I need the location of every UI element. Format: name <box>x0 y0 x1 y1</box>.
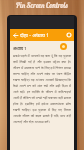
staticText: अध्याय 1 <box>13 46 27 51</box>
button[interactable]: Back <box>11 31 19 39</box>
button[interactable]: Bookmark <box>60 43 67 50</box>
staticText: सबसे पहले मैं आपको यह बता दूं कि यह पुस्… <box>13 53 71 124</box>
button[interactable]: Settings <box>65 31 73 39</box>
staticText: Pin Screen Controls <box>16 1 68 10</box>
staticText: दोहा - अध्याय 1 <box>20 32 49 39</box>
